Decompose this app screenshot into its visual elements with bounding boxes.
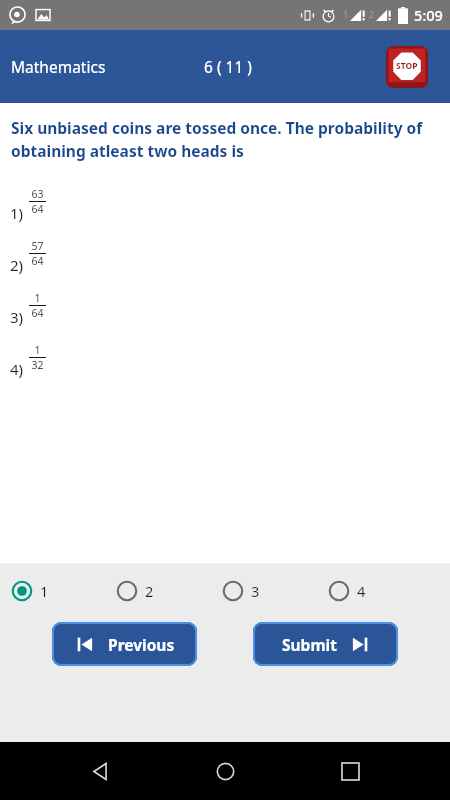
staticText: 2) bbox=[10, 255, 24, 275]
button[interactable]: Back bbox=[77, 747, 125, 795]
staticText: 63 bbox=[31, 187, 44, 201]
staticText: 4) bbox=[10, 359, 24, 379]
staticText: 64 bbox=[31, 254, 44, 268]
staticText: STOP bbox=[396, 60, 418, 72]
staticText: 57 bbox=[31, 239, 44, 253]
staticText: 64 bbox=[31, 306, 44, 320]
button[interactable]: Stop test bbox=[386, 46, 428, 88]
staticText: 5:09 bbox=[414, 5, 443, 25]
button[interactable]: Previous bbox=[52, 622, 197, 666]
button[interactable]: 1 bbox=[11, 580, 116, 602]
staticText: 1 bbox=[34, 343, 41, 357]
button[interactable]: Home bbox=[201, 747, 249, 795]
staticText: 4 bbox=[357, 581, 366, 601]
staticText: 1) bbox=[10, 203, 24, 223]
staticText: Mathematics bbox=[11, 56, 106, 77]
staticText: 1 bbox=[343, 8, 349, 20]
staticText: 64 bbox=[31, 202, 44, 216]
staticText: 6 ( 11 ) bbox=[204, 56, 252, 77]
staticText: Submit bbox=[282, 634, 337, 655]
staticText: 2 bbox=[369, 8, 375, 20]
staticText: Previous bbox=[108, 634, 175, 655]
staticText: 2 bbox=[145, 581, 154, 601]
button[interactable]: Recents bbox=[326, 747, 374, 795]
staticText: 3 bbox=[251, 581, 260, 601]
staticText: 32 bbox=[31, 358, 44, 372]
button[interactable]: 4 bbox=[328, 580, 434, 602]
button[interactable]: 3 bbox=[222, 580, 328, 602]
button[interactable]: 2 bbox=[116, 580, 222, 602]
staticText: 3) bbox=[10, 307, 24, 327]
staticText: 1 bbox=[40, 581, 49, 601]
button[interactable]: Submit bbox=[253, 622, 398, 666]
staticText: 1 bbox=[34, 291, 41, 305]
staticText: Six unbiased coins are tossed once. The … bbox=[11, 117, 424, 162]
